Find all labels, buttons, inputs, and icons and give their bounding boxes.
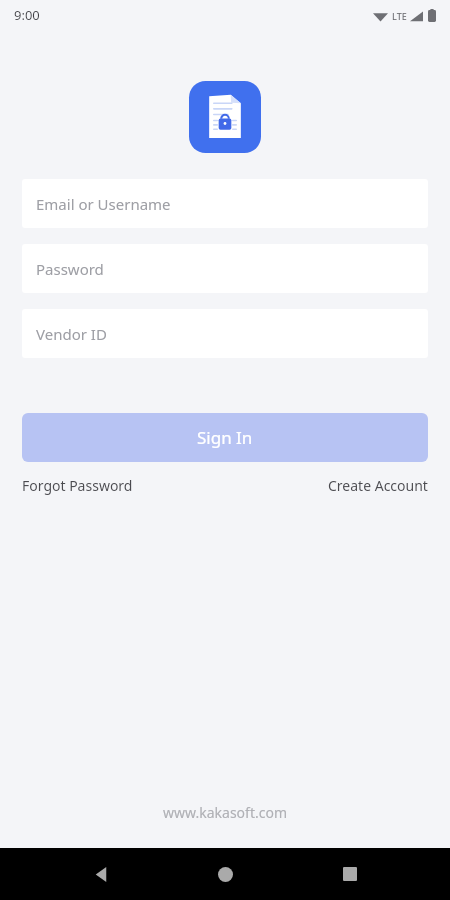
button[interactable]: Sign In xyxy=(22,413,428,462)
button[interactable]: Home xyxy=(201,850,249,898)
staticText: Email or Username xyxy=(36,194,171,214)
staticText: Forgot Password xyxy=(22,476,133,495)
button[interactable]: Forgot Password xyxy=(22,472,133,499)
staticText: Vendor ID xyxy=(36,324,107,344)
button[interactable]: Password xyxy=(22,244,428,293)
staticText: LTE xyxy=(392,10,407,22)
staticText: 9:00 xyxy=(14,6,40,24)
button[interactable]: Create Account xyxy=(328,472,428,499)
button[interactable]: Recent apps xyxy=(326,850,374,898)
staticText: www.kakasoft.com xyxy=(163,803,287,822)
button[interactable]: Vendor ID xyxy=(22,309,428,358)
staticText: Sign In xyxy=(197,426,253,449)
button[interactable]: Email or Username xyxy=(22,179,428,228)
staticText: Create Account xyxy=(328,476,428,495)
button[interactable]: Back xyxy=(77,850,125,898)
staticText: Password xyxy=(36,259,104,279)
